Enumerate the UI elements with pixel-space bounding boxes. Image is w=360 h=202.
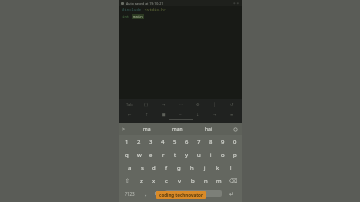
button[interactable]: w — [133, 148, 145, 161]
button[interactable]: Editor action ■ — [155, 109, 172, 119]
button[interactable]: Shift — [120, 174, 135, 187]
staticText: q — [125, 151, 129, 159]
button[interactable]: Emoji — [151, 188, 164, 199]
staticText: ● ● — [233, 1, 240, 5]
button[interactable]: ma — [140, 125, 154, 134]
staticText: m — [216, 177, 222, 185]
button[interactable]: Editor action → — [155, 99, 172, 109]
staticText: v — [178, 177, 182, 185]
button[interactable]: 5 — [169, 135, 181, 148]
staticText: n — [204, 177, 208, 185]
button[interactable]: Editor action ≡ — [223, 109, 240, 119]
button[interactable]: Keyboard settings — [232, 126, 239, 133]
button[interactable]: l — [224, 161, 237, 174]
staticText: l — [230, 164, 232, 172]
button[interactable]: t — [169, 148, 181, 161]
button[interactable]: , — [140, 188, 151, 199]
staticText: 2 — [137, 138, 141, 146]
button[interactable]: n — [199, 174, 212, 187]
staticText: c — [165, 177, 168, 185]
staticText: ■ — [162, 112, 166, 117]
staticText: Auto saved at 19:10:21 — [126, 1, 164, 6]
button[interactable]: ?123 — [120, 188, 140, 199]
staticText: o — [221, 151, 225, 159]
staticText: ↑ — [145, 112, 149, 117]
button[interactable]: g — [172, 161, 185, 174]
button[interactable]: 9 — [217, 135, 229, 148]
button[interactable]: b — [186, 174, 199, 187]
button[interactable]: Editor action ↺ — [223, 99, 240, 109]
button[interactable]: 0 — [229, 135, 241, 148]
staticText: ⚙ — [196, 102, 200, 107]
staticText: Tab — [126, 102, 133, 107]
button[interactable]: d — [148, 161, 160, 174]
button[interactable]: m — [212, 174, 225, 187]
button[interactable]: > — [122, 126, 125, 133]
staticText: r — [162, 151, 165, 159]
staticText: coding technovator — [159, 192, 203, 198]
staticText: p — [233, 151, 237, 159]
staticText: w — [137, 151, 142, 159]
button[interactable]: Editor action │ — [206, 99, 223, 109]
staticText: #include — [122, 7, 142, 12]
button[interactable]: Editor action Tab — [121, 99, 138, 109]
button[interactable]: h — [185, 161, 198, 174]
button[interactable]: v — [173, 174, 186, 187]
button[interactable]: hai — [202, 125, 216, 134]
button[interactable]: r — [157, 148, 169, 161]
button[interactable]: f — [160, 161, 172, 174]
button[interactable]: p — [229, 148, 241, 161]
staticText: j — [204, 164, 206, 172]
button[interactable]: Editor action ⚙ — [189, 99, 206, 109]
staticText: │ — [213, 102, 216, 107]
staticText: 7 — [197, 138, 201, 146]
button[interactable]: 2 — [133, 135, 145, 148]
button[interactable]: s — [136, 161, 148, 174]
button[interactable]: x — [147, 174, 160, 187]
staticText: s — [141, 164, 144, 172]
staticText: main — [133, 14, 143, 19]
button[interactable]: 1 — [120, 135, 133, 148]
button[interactable]: 8 — [205, 135, 217, 148]
button[interactable]: Backspace — [225, 174, 241, 187]
staticText: ⋯ — [179, 102, 183, 107]
button[interactable]: z — [135, 174, 147, 187]
button[interactable]: a — [124, 161, 136, 174]
button[interactable]: Editor action { } — [138, 99, 155, 109]
staticText: f — [165, 164, 168, 172]
button[interactable]: 6 — [181, 135, 193, 148]
button[interactable]: 3 — [145, 135, 157, 148]
button[interactable]: Editor action ← — [121, 109, 138, 119]
button[interactable]: k — [211, 161, 224, 174]
button[interactable]: j — [198, 161, 211, 174]
staticText: 1 — [125, 138, 129, 146]
button[interactable]: o — [217, 148, 229, 161]
button[interactable]: q — [120, 148, 133, 161]
button[interactable]: Editor action ↑ — [138, 109, 155, 119]
staticText: → — [162, 102, 166, 107]
button[interactable]: e — [145, 148, 157, 161]
button[interactable]: 7 — [193, 135, 205, 148]
staticText: ↺ — [230, 102, 234, 107]
staticText: , — [145, 190, 147, 198]
button[interactable]: y — [181, 148, 193, 161]
button[interactable]: coding technovator — [156, 191, 206, 199]
button[interactable]: Editor action → — [206, 109, 223, 119]
staticText: { } — [144, 102, 149, 107]
staticText: k — [216, 164, 220, 172]
staticText: u — [197, 151, 201, 159]
staticText: ?123 — [125, 191, 135, 197]
staticText: 4 — [161, 138, 165, 146]
staticText: 6 — [185, 138, 189, 146]
button[interactable]: i — [205, 148, 217, 161]
button[interactable]: Editor action ↓ — [189, 109, 206, 119]
staticText: → — [213, 112, 217, 117]
button[interactable]: c — [160, 174, 173, 187]
button[interactable]: man — [169, 125, 186, 134]
button[interactable]: Space — [165, 190, 222, 197]
button[interactable]: Enter — [223, 188, 241, 199]
button[interactable]: 4 — [157, 135, 169, 148]
button[interactable]: u — [193, 148, 205, 161]
